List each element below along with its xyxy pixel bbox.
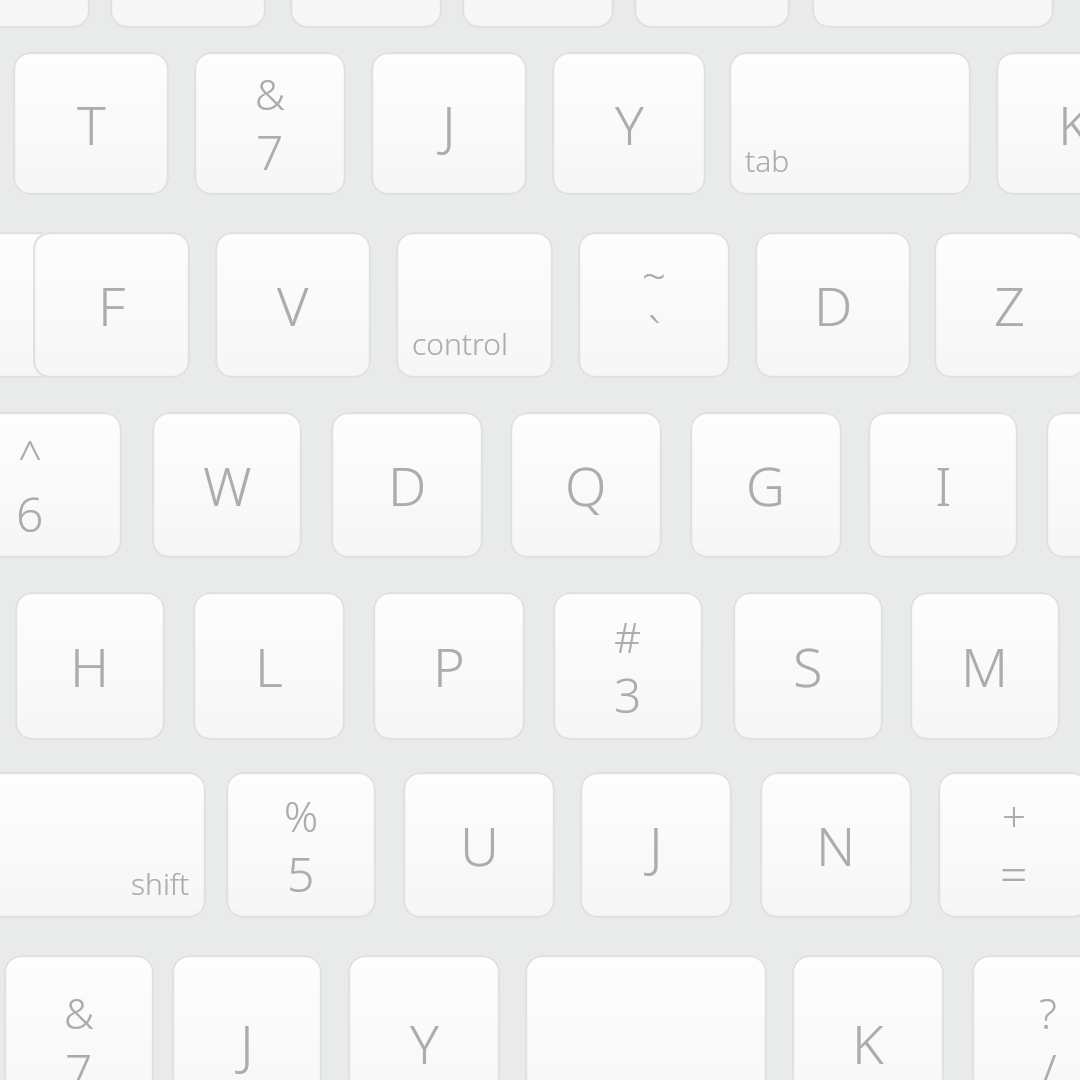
button[interactable]: U	[403, 772, 555, 918]
button[interactable]: Q	[510, 412, 662, 558]
button[interactable]	[1046, 412, 1080, 558]
staticText: D	[388, 448, 427, 522]
button[interactable]: % 5	[226, 772, 376, 918]
staticText: I	[935, 448, 952, 522]
button[interactable]	[290, 0, 442, 28]
button[interactable]: I	[868, 412, 1018, 558]
button[interactable]: & 7	[4, 955, 154, 1080]
staticText: `	[648, 301, 661, 366]
button[interactable]: Z	[934, 232, 1080, 378]
button[interactable]: ? /	[972, 955, 1080, 1080]
staticText: +	[1002, 787, 1026, 844]
button[interactable]: D	[331, 412, 483, 558]
button[interactable]: # 3	[553, 592, 703, 740]
button[interactable]: S	[733, 592, 883, 740]
button[interactable]: Y	[552, 52, 706, 195]
button[interactable]: ^ 6	[0, 412, 122, 558]
button[interactable]: K	[792, 955, 944, 1080]
button[interactable]	[634, 0, 790, 28]
staticText: D	[814, 268, 853, 342]
button[interactable]	[0, 232, 80, 378]
staticText: M	[961, 629, 1009, 703]
staticText: Y	[615, 87, 644, 161]
button[interactable]: F	[33, 232, 190, 378]
staticText: W	[203, 448, 252, 522]
button[interactable]	[0, 0, 90, 28]
button[interactable]: W	[152, 412, 302, 558]
button[interactable]: Y	[348, 955, 500, 1080]
staticText: ^	[18, 427, 42, 484]
staticText: L	[255, 629, 283, 703]
staticText: Q	[565, 448, 607, 522]
button[interactable]: D	[755, 232, 911, 378]
button[interactable]: K	[996, 52, 1080, 195]
staticText: Z	[994, 268, 1026, 342]
button[interactable]	[110, 0, 266, 28]
button[interactable]: H	[15, 592, 165, 740]
staticText: 3	[614, 662, 642, 727]
button[interactable]: J	[371, 52, 527, 195]
button[interactable]: M	[910, 592, 1060, 740]
staticText: U	[460, 808, 499, 882]
staticText: 5	[287, 841, 315, 906]
button[interactable]: ~ `	[578, 232, 730, 378]
button[interactable]: V	[215, 232, 371, 378]
staticText: 6	[16, 481, 44, 546]
button[interactable]: tab	[525, 955, 767, 1080]
staticText: shift	[131, 863, 190, 904]
button[interactable]: G	[690, 412, 842, 558]
button[interactable]: shift	[0, 772, 206, 918]
staticText: Y	[410, 1006, 439, 1080]
button[interactable]	[812, 0, 1054, 28]
staticText: /	[1040, 1038, 1057, 1080]
staticText: tab	[745, 140, 790, 181]
staticText: 7	[256, 119, 284, 184]
staticText: J	[240, 1006, 254, 1080]
staticText: &	[64, 984, 95, 1041]
staticText: J	[442, 87, 456, 161]
button[interactable]: & 7	[194, 52, 346, 195]
button[interactable]: P	[373, 592, 525, 740]
button[interactable]: N	[760, 772, 912, 918]
staticText: F	[98, 268, 126, 342]
button[interactable]: tab	[729, 52, 971, 195]
staticText: K	[1058, 87, 1080, 161]
button[interactable]: T	[13, 52, 169, 195]
staticText: #	[614, 608, 642, 665]
button[interactable]: J	[580, 772, 732, 918]
button[interactable]: control	[396, 232, 553, 378]
staticText: P	[433, 629, 465, 703]
staticText: control	[412, 323, 508, 364]
staticText: S	[793, 629, 823, 703]
staticText: =	[1000, 841, 1028, 906]
staticText: G	[746, 448, 786, 522]
staticText: V	[277, 268, 309, 342]
staticText: N	[816, 808, 856, 882]
staticText: K	[852, 1006, 884, 1080]
staticText: H	[70, 629, 110, 703]
button[interactable]: J	[172, 955, 322, 1080]
button[interactable]: + =	[938, 772, 1080, 918]
staticText: J	[649, 808, 663, 882]
staticText: ~	[642, 247, 666, 304]
button[interactable]: L	[193, 592, 345, 740]
staticText: &	[255, 65, 286, 122]
staticText: %	[284, 787, 319, 844]
staticText: T	[77, 87, 106, 161]
staticText: 7	[65, 1038, 93, 1080]
button[interactable]	[462, 0, 614, 28]
staticText: ?	[1039, 984, 1057, 1041]
